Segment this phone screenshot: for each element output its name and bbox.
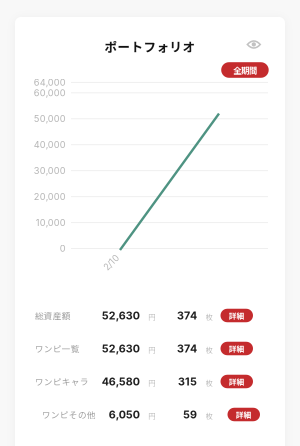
staticText: 総資産額 — [35, 309, 71, 322]
staticText: 枚 — [205, 410, 212, 421]
staticText: 枚 — [205, 311, 212, 322]
staticText: 52,630 — [102, 309, 140, 322]
staticText: 30,000 — [34, 165, 66, 176]
staticText: 46,580 — [102, 375, 140, 388]
staticText: 60,000 — [34, 87, 66, 98]
staticText: 10,000 — [36, 217, 66, 228]
staticText: 2/10 — [102, 257, 120, 268]
button[interactable]: 資産を隠す — [243, 34, 265, 54]
staticText: 52,630 — [102, 342, 140, 355]
staticText: ワンピキャラ — [35, 375, 89, 388]
staticText: 枚 — [205, 344, 212, 355]
staticText: 詳細 — [229, 310, 245, 321]
staticText: 0 — [60, 243, 66, 254]
staticText: 40,000 — [34, 139, 66, 150]
staticText: 374 — [177, 309, 197, 322]
staticText: 円 — [148, 410, 155, 421]
staticText: ワンピその他 — [42, 408, 96, 421]
staticText: 50,000 — [34, 113, 66, 124]
staticText: 315 — [178, 375, 197, 388]
button[interactable]: 詳細 — [220, 375, 253, 388]
staticText: 59 — [183, 408, 197, 421]
staticText: 円 — [148, 311, 155, 322]
staticText: 詳細 — [229, 343, 245, 354]
staticText: 374 — [177, 342, 197, 355]
staticText: 64,000 — [34, 77, 66, 88]
button[interactable]: 詳細 — [227, 408, 260, 421]
staticText: 円 — [148, 344, 155, 355]
staticText: 円 — [148, 377, 155, 388]
staticText: ワンピ一覧 — [35, 342, 80, 355]
staticText: 6,050 — [109, 408, 140, 421]
staticText: 20,000 — [34, 191, 66, 202]
button[interactable]: 全期間 — [221, 62, 269, 78]
button[interactable]: 詳細 — [220, 309, 253, 322]
staticText: 詳細 — [229, 376, 245, 387]
staticText: 詳細 — [236, 409, 252, 420]
staticText: 枚 — [205, 377, 212, 388]
staticText: 全期間 — [233, 64, 257, 76]
staticText: ポートフォリオ — [104, 37, 195, 55]
button[interactable]: 詳細 — [220, 342, 253, 355]
